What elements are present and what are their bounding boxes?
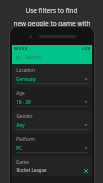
button[interactable]: Platform xyxy=(12,133,92,156)
staticText: Search xyxy=(25,54,41,61)
button[interactable]: Location xyxy=(12,64,92,87)
button[interactable]: Gender xyxy=(12,110,92,133)
button[interactable]: Game xyxy=(12,156,92,176)
staticText: Location xyxy=(16,67,35,73)
staticText: Use filters to find xyxy=(25,6,78,15)
staticText: Gender xyxy=(16,113,33,119)
staticText: new people to game with xyxy=(13,19,91,28)
button[interactable]: Open navigation menu xyxy=(15,55,20,60)
button[interactable]: Open navigation menu xyxy=(12,51,92,64)
staticText: Rocket League xyxy=(16,167,47,173)
button[interactable]: Clear game filter xyxy=(83,168,88,173)
staticText: Germany xyxy=(16,76,36,82)
staticText: Game xyxy=(16,159,29,165)
staticText: Age xyxy=(16,90,25,96)
staticText: Any xyxy=(16,122,25,128)
staticText: 18 - 29 xyxy=(16,99,31,105)
button[interactable]: Age xyxy=(12,87,92,110)
staticText: Platform xyxy=(16,136,35,142)
staticText: PC xyxy=(16,145,22,151)
